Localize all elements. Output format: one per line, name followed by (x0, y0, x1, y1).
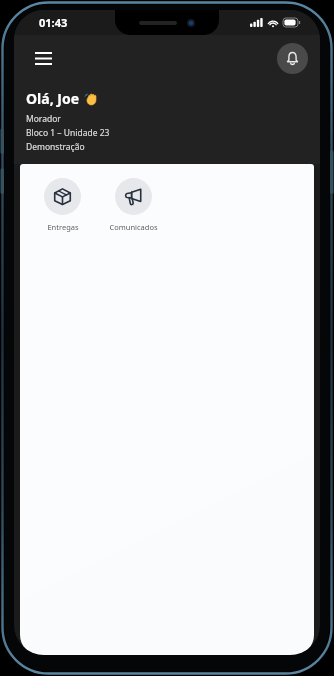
staticText: Demonstração (26, 141, 85, 153)
staticText: Morador (26, 113, 61, 125)
staticText: Entregas (47, 222, 79, 232)
staticText: Bloco 1 – Unidade 23 (26, 127, 110, 139)
button[interactable]: Comunicados (105, 176, 162, 234)
button[interactable]: Notifications (277, 43, 308, 74)
button[interactable]: Entregas (34, 176, 91, 234)
staticText: Comunicados (109, 222, 158, 232)
button[interactable]: Menu (26, 41, 60, 75)
staticText: 01:43 (39, 15, 68, 30)
staticText: Olá, Joe (26, 89, 80, 108)
